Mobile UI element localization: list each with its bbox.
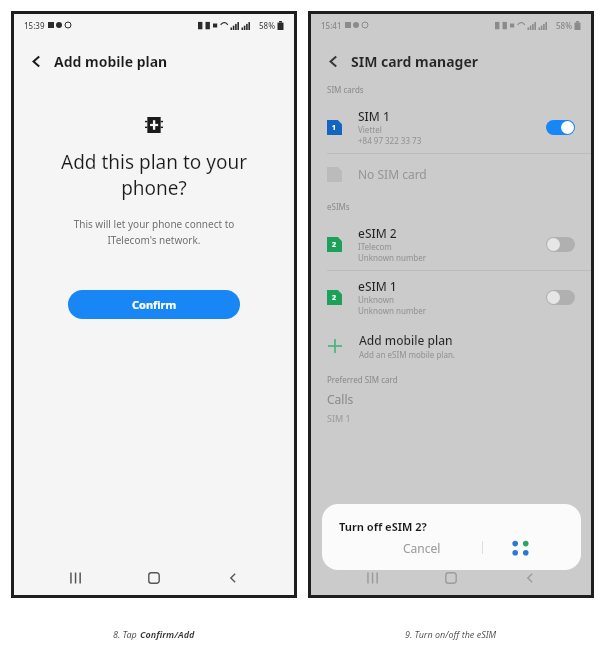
staticText: Preferred SIM card: [327, 374, 398, 385]
button[interactable]: Toggle eSIM 1: [546, 290, 575, 305]
staticText: Add an eSIM mobile plan.: [359, 349, 456, 360]
staticText: Viettel: [358, 124, 382, 135]
button[interactable]: Home: [136, 561, 172, 595]
button[interactable]: Toggle eSIM 2: [546, 237, 575, 252]
staticText: No SIM card: [358, 166, 427, 182]
staticText: 9. Turn on/off the eSIM: [405, 628, 497, 640]
staticText: eSIM 1: [358, 278, 397, 294]
staticText: 58%: [556, 20, 572, 31]
button[interactable]: No SIM card: [327, 154, 575, 194]
staticText: SIM 1: [327, 412, 351, 424]
staticText: Unknown number: [358, 252, 427, 263]
staticText: SIM cards: [327, 84, 364, 95]
staticText: This will let your phone connect to ITel…: [34, 217, 274, 246]
staticText: 8. Tap: [113, 628, 140, 640]
staticText: +84 97 322 33 73: [358, 135, 422, 146]
staticText: eSIM 2: [358, 225, 397, 241]
button[interactable]: Back: [512, 561, 548, 595]
staticText: SIM card manager: [351, 52, 479, 71]
button[interactable]: Add mobile plan: [327, 325, 575, 367]
button[interactable]: SIM card manager: [326, 45, 591, 77]
staticText: 2: [332, 293, 337, 303]
button[interactable]: Back: [215, 561, 251, 595]
staticText: Confirm: [132, 297, 177, 312]
staticText: 2: [332, 240, 337, 250]
button[interactable]: Add mobile plan: [29, 45, 294, 77]
staticText: 15:41: [321, 20, 342, 31]
staticText: Add this plan to your phone?: [28, 149, 280, 201]
button[interactable]: 1: [327, 101, 575, 153]
staticText: Cancel: [403, 540, 441, 556]
button[interactable]: Recent apps: [354, 561, 390, 595]
button[interactable]: Recent apps: [57, 561, 93, 595]
staticText: ITelecom: [358, 241, 392, 252]
staticText: SIM 1: [358, 108, 390, 124]
staticText: Turn off eSIM 2?: [339, 519, 427, 534]
staticText: 1: [332, 123, 337, 133]
staticText: Unknown number: [358, 305, 427, 316]
button[interactable]: 2: [327, 218, 575, 270]
staticText: 15:39: [24, 20, 45, 31]
staticText: Add mobile plan: [359, 332, 453, 348]
button[interactable]: Confirm: [68, 290, 240, 319]
button[interactable]: 2: [327, 271, 575, 323]
staticText: 58%: [259, 20, 275, 31]
staticText: Confirm/Add: [140, 628, 195, 640]
button[interactable]: Toggle SIM 1: [546, 120, 575, 135]
button[interactable]: Cancel: [374, 536, 470, 560]
button[interactable]: Home: [433, 561, 469, 595]
staticText: Add mobile plan: [54, 52, 168, 71]
staticText: Unknown: [358, 294, 394, 305]
staticText: Calls: [327, 391, 354, 407]
staticText: eSIMs: [327, 201, 350, 212]
